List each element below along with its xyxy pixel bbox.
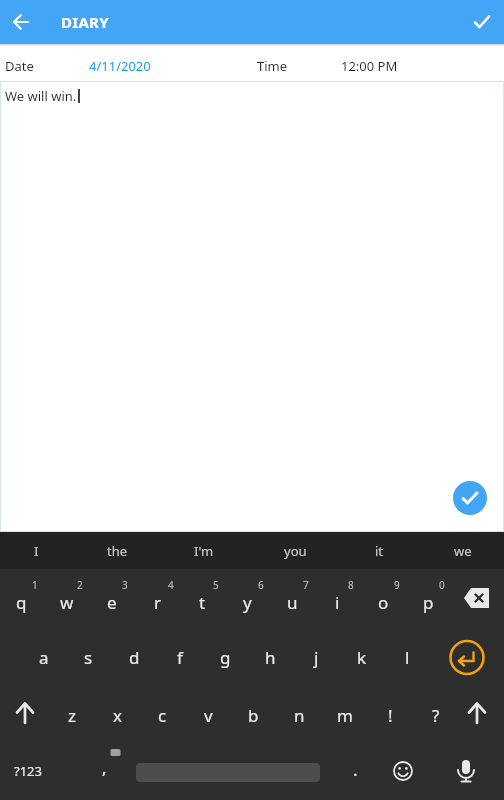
staticText: d: [129, 646, 140, 669]
staticText: 1: [32, 578, 38, 592]
staticText: 12:00 PM: [341, 57, 398, 75]
button[interactable]: a: [21, 627, 66, 684]
staticText: s: [84, 646, 93, 669]
button[interactable]: g: [203, 627, 248, 684]
staticText: 4: [168, 578, 174, 592]
staticText: u: [287, 591, 298, 614]
staticText: I: [34, 542, 39, 560]
staticText: 3: [122, 578, 128, 592]
staticText: ?: [432, 704, 440, 727]
button[interactable]: I: [0, 532, 74, 569]
staticText: r: [154, 591, 162, 614]
staticText: x: [113, 704, 122, 727]
staticText: 4/11/2020: [89, 57, 151, 75]
button[interactable]: z: [49, 684, 94, 742]
button[interactable]: x: [95, 684, 140, 742]
staticText: I'm: [194, 542, 214, 560]
staticText: m: [337, 704, 353, 727]
button[interactable]: f: [157, 627, 202, 684]
staticText: y: [243, 591, 252, 614]
staticText: o: [378, 591, 389, 614]
button[interactable]: the: [79, 532, 155, 569]
staticText: n: [294, 704, 305, 727]
button[interactable]: e: [89, 569, 134, 627]
staticText: i: [335, 591, 340, 614]
staticText: 6: [258, 578, 264, 592]
staticText: 9: [394, 578, 400, 592]
button[interactable]: .: [333, 742, 378, 800]
staticText: 5: [213, 578, 219, 592]
staticText: 7: [303, 578, 309, 592]
staticText: a: [39, 646, 49, 669]
button[interactable]: q: [0, 569, 44, 627]
button[interactable]: [450, 569, 502, 627]
staticText: h: [265, 646, 276, 669]
button[interactable]: you: [257, 532, 333, 569]
button[interactable]: l: [385, 627, 430, 684]
button[interactable]: I'm: [166, 532, 242, 569]
staticText: it: [375, 542, 384, 560]
button[interactable]: [379, 742, 427, 800]
button[interactable]: [453, 481, 487, 515]
button[interactable]: ?: [413, 684, 458, 742]
button[interactable]: c: [140, 684, 185, 742]
button[interactable]: it: [341, 532, 417, 569]
button[interactable]: we: [425, 532, 501, 569]
button[interactable]: ,: [82, 742, 127, 800]
button[interactable]: b: [231, 684, 276, 742]
button[interactable]: i: [315, 569, 360, 627]
button[interactable]: m: [322, 684, 367, 742]
staticText: DIARY: [61, 12, 109, 32]
button[interactable]: w: [44, 569, 89, 627]
button[interactable]: [442, 742, 490, 800]
staticText: p: [423, 591, 434, 614]
staticText: j: [314, 646, 319, 669]
staticText: you: [284, 542, 307, 560]
button[interactable]: [0, 684, 50, 742]
staticText: the: [107, 542, 128, 560]
staticText: ?123: [14, 762, 42, 780]
staticText: !: [388, 704, 393, 727]
staticText: l: [405, 646, 410, 669]
staticText: we: [454, 542, 472, 560]
button[interactable]: d: [112, 627, 157, 684]
button[interactable]: k: [339, 627, 384, 684]
button[interactable]: [6, 7, 36, 37]
staticText: q: [16, 591, 27, 614]
button[interactable]: 12:00 PM: [341, 57, 398, 75]
staticText: c: [158, 704, 167, 727]
staticText: w: [60, 591, 74, 614]
staticText: 8: [348, 578, 354, 592]
staticText: z: [68, 704, 76, 727]
button[interactable]: s: [66, 627, 111, 684]
staticText: g: [220, 646, 231, 669]
button[interactable]: ?123: [0, 742, 56, 800]
staticText: We will win.: [5, 87, 77, 105]
staticText: t: [199, 591, 206, 614]
button[interactable]: u: [270, 569, 315, 627]
button[interactable]: t: [180, 569, 225, 627]
staticText: b: [248, 704, 259, 727]
button[interactable]: [452, 684, 502, 742]
button[interactable]: y: [225, 569, 270, 627]
button[interactable]: o: [361, 569, 406, 627]
button[interactable]: v: [186, 684, 231, 742]
button[interactable]: n: [277, 684, 322, 742]
staticText: e: [107, 591, 117, 614]
staticText: Date: [5, 57, 34, 75]
button[interactable]: 4/11/2020: [89, 57, 151, 75]
staticText: v: [204, 704, 213, 727]
staticText: ,: [102, 756, 107, 779]
button[interactable]: j: [294, 627, 339, 684]
staticText: .: [353, 758, 358, 781]
button[interactable]: r: [135, 569, 180, 627]
staticText: f: [177, 646, 183, 669]
button[interactable]: [467, 7, 497, 37]
button[interactable]: !: [368, 684, 413, 742]
button[interactable]: p: [406, 569, 451, 627]
button[interactable]: [441, 627, 493, 684]
button[interactable]: h: [248, 627, 293, 684]
staticText: Time: [257, 57, 288, 75]
staticText: k: [357, 646, 367, 669]
